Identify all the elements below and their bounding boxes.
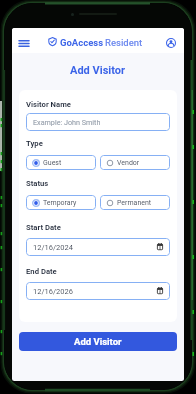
- staticText: Vendor: [117, 159, 140, 167]
- button[interactable]: Temporary: [26, 195, 96, 210]
- staticText: Status: [26, 179, 49, 188]
- staticText: End Date: [26, 267, 57, 276]
- staticText: Add Visitor: [74, 336, 122, 347]
- button[interactable]: Add Visitor: [19, 332, 177, 351]
- staticText: Type: [26, 139, 43, 148]
- staticText: Permanent: [117, 199, 152, 207]
- button[interactable]: 12/16/2026: [26, 282, 170, 300]
- button[interactable]: Open navigation menu: [14, 35, 34, 53]
- staticText: Visitor Name: [26, 100, 71, 109]
- staticText: 12/16/2026: [33, 287, 73, 296]
- staticText: Start Date: [26, 223, 61, 232]
- staticText: Example: John Smith: [33, 118, 101, 126]
- button[interactable]: Account: [161, 33, 181, 53]
- staticText: Add Visitor: [70, 64, 126, 77]
- button[interactable]: Permanent: [100, 195, 170, 210]
- staticText: Resident: [105, 37, 143, 48]
- staticText: Temporary: [43, 199, 77, 207]
- button[interactable]: Vendor: [100, 155, 170, 170]
- button[interactable]: Example: John Smith: [26, 113, 170, 131]
- staticText: Guest: [43, 159, 62, 167]
- button[interactable]: Guest: [26, 155, 96, 170]
- button[interactable]: 12/16/2024: [26, 238, 170, 256]
- staticText: GoAccess: [60, 37, 104, 48]
- staticText: 12/16/2024: [33, 243, 73, 252]
